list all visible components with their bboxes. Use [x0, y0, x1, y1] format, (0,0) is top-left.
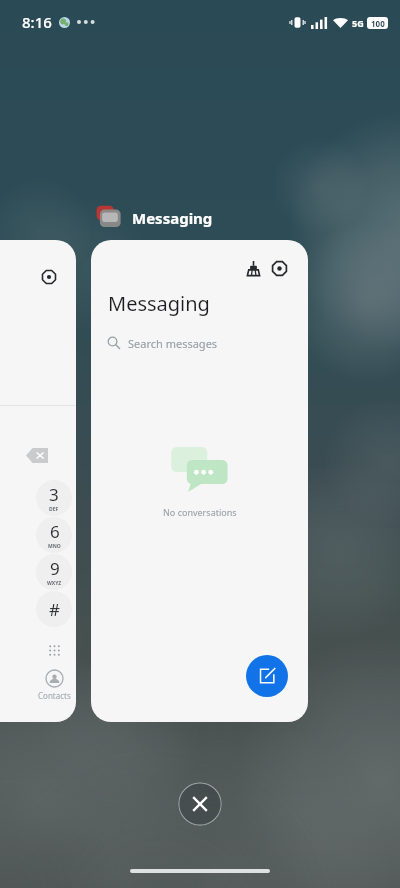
button[interactable]: Backspace — [22, 445, 52, 465]
button[interactable]: Search messages — [108, 331, 291, 355]
button[interactable]: Contacts — [26, 670, 76, 701]
staticText: Messaging — [108, 290, 210, 317]
staticText: DEF — [49, 506, 59, 513]
button[interactable]: 6 — [36, 517, 72, 553]
button[interactable]: Clean up — [239, 254, 267, 282]
button[interactable]: Compose message — [246, 655, 288, 697]
staticText: 9 — [50, 557, 60, 580]
staticText: # — [49, 598, 60, 621]
staticText: WXYZ — [47, 580, 62, 587]
button[interactable]: 9 — [36, 554, 72, 590]
staticText: MNO — [48, 543, 61, 550]
button[interactable]: Clean up — [91, 240, 308, 722]
staticText: No conversations — [163, 506, 237, 518]
button[interactable]: Keypad — [40, 636, 68, 664]
button[interactable]: Settings — [36, 264, 62, 290]
staticText: Search messages — [128, 336, 218, 351]
staticText: 6 — [50, 520, 60, 543]
staticText: Contacts — [38, 690, 71, 701]
staticText: Messaging — [132, 208, 213, 228]
staticText: 100 — [371, 18, 385, 29]
staticText: 8:16 — [22, 12, 52, 32]
staticText: 3 — [49, 483, 59, 506]
button[interactable]: # — [36, 591, 72, 627]
staticText: 5G — [352, 17, 364, 29]
button[interactable]: Settings — [0, 240, 76, 722]
button[interactable]: 3 — [36, 480, 72, 516]
button[interactable]: Settings — [265, 254, 293, 282]
button[interactable]: Clear all — [178, 782, 222, 826]
